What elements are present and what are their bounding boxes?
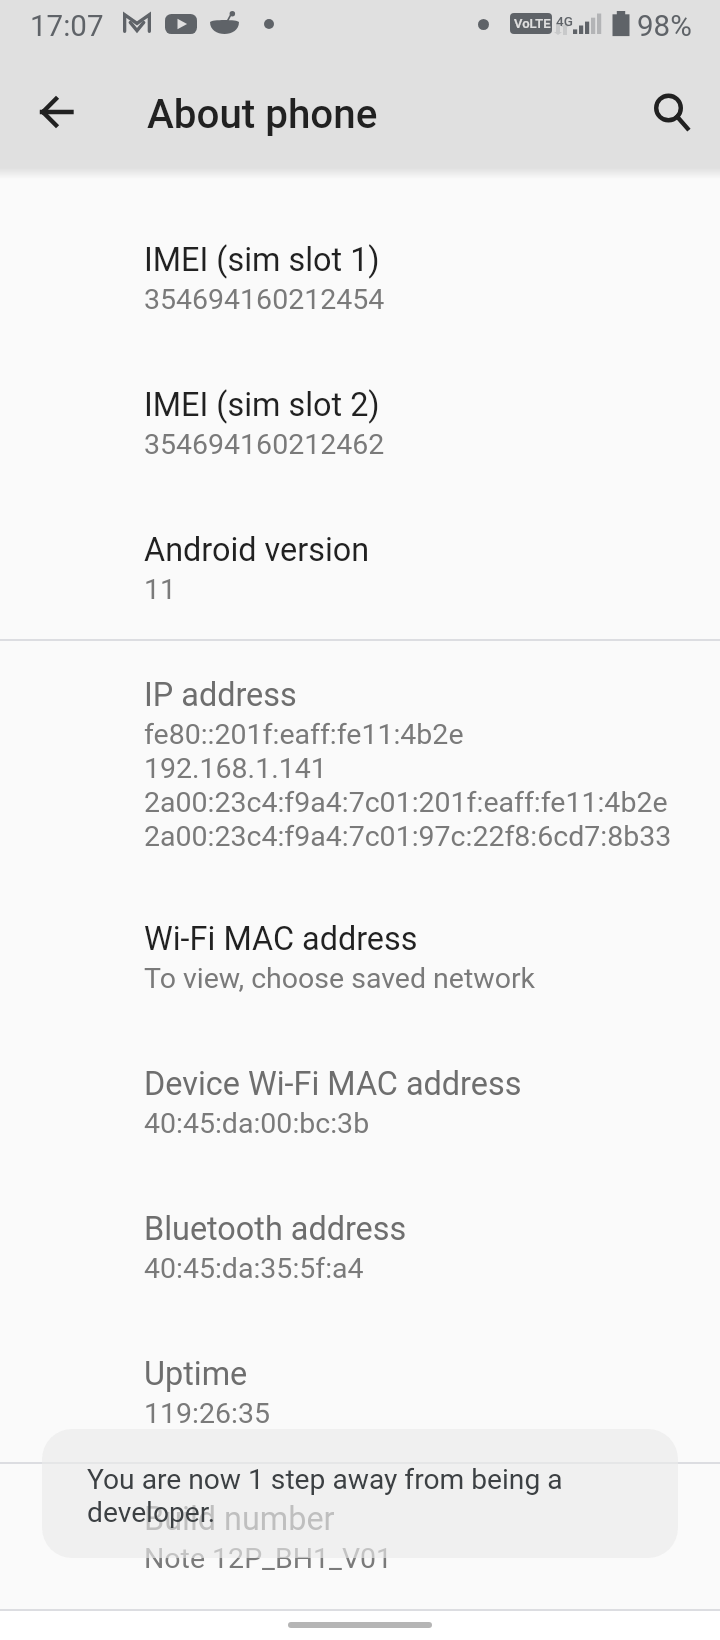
button[interactable]: Build number [0,1471,720,1574]
staticText: Wi-Fi MAC address [144,920,418,958]
button[interactable]: IP address [0,647,720,852]
staticText: Uptime [144,1355,248,1393]
staticText: 40:45:da:00:bc:3b [144,1107,370,1140]
staticText: Android version [144,531,370,569]
staticText: Device Wi-Fi MAC address [144,1065,522,1103]
button[interactable]: Bluetooth address [0,1181,720,1284]
staticText: To view, choose saved network [144,962,536,995]
staticText: IMEI (sim slot 2) [144,386,380,424]
button[interactable]: IMEI (sim slot 1) [0,212,720,315]
staticText: Note 12P_BH1_V01 [144,1542,393,1575]
button[interactable]: Back [24,80,88,144]
staticText: 2a00:23c4:f9a4:7c01:97c:22f8:6cd7:8b33 [144,820,672,853]
staticText: 17:07 [30,9,104,44]
staticText: VoLTE [514,16,551,31]
button[interactable]: Wi-Fi MAC address [0,891,720,994]
staticText: About phone [147,91,378,138]
button[interactable]: Device Wi-Fi MAC address [0,1036,720,1139]
button[interactable]: IMEI (sim slot 2) [0,357,720,460]
staticText: Build number [144,1500,335,1538]
staticText: IP address [144,676,297,714]
staticText: You are now 1 step away from being a dev… [87,1463,587,1529]
staticText: 354694160212462 [144,428,385,461]
staticText: 354694160212454 [144,283,385,316]
staticText: 119:26:35 [144,1397,270,1430]
staticText: IMEI (sim slot 1) [144,241,380,279]
staticText: 11 [144,573,177,606]
staticText: fe80::201f:eaff:fe11:4b2e [144,718,464,751]
button[interactable]: Uptime [0,1326,720,1429]
staticText: 40:45:da:35:5f:a4 [144,1252,364,1285]
staticText: 4G [556,13,573,29]
button[interactable]: Search [636,80,700,144]
button[interactable]: Android version [0,502,720,605]
staticText: 98% [637,9,692,44]
staticText: Bluetooth address [144,1210,407,1248]
staticText: 2a00:23c4:f9a4:7c01:201f:eaff:fe11:4b2e [144,786,668,819]
staticText: 192.168.1.141 [144,752,327,785]
